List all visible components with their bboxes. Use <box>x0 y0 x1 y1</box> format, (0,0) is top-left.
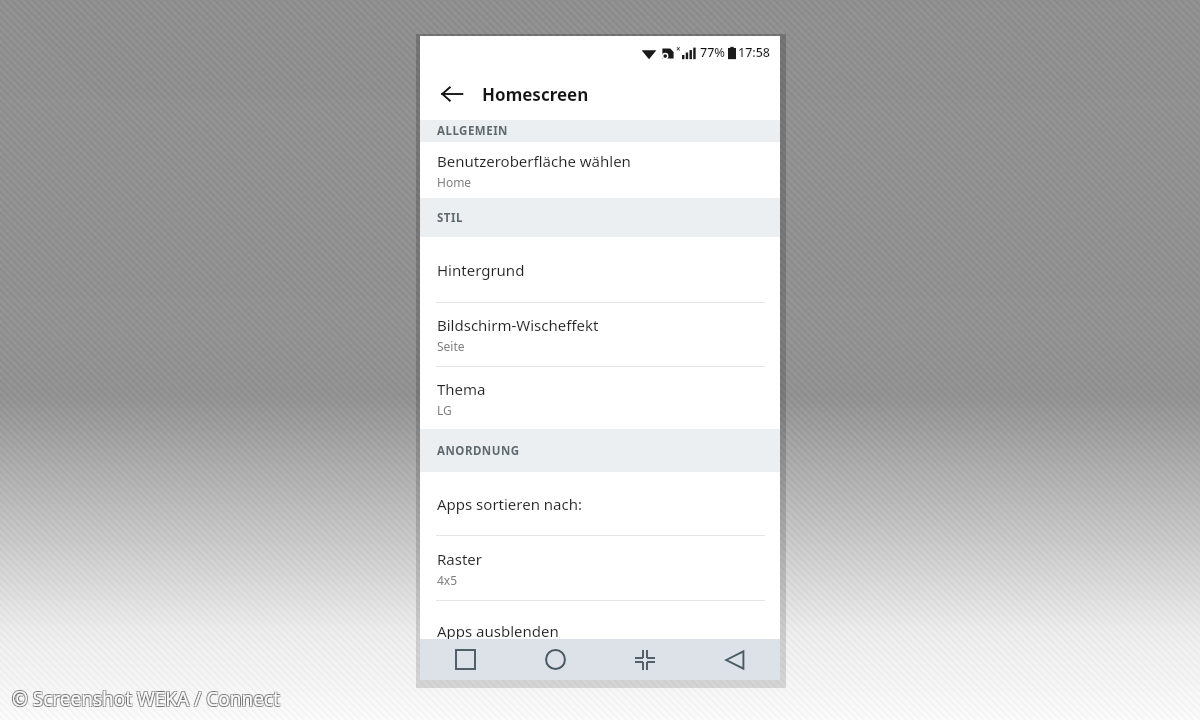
staticText: Apps ausblenden <box>437 621 559 641</box>
staticText: © Screenshot WEKA / Connect <box>11 687 279 713</box>
staticText: © Screenshot WEKA / Connect <box>11 685 279 711</box>
button[interactable]: Back <box>690 639 780 680</box>
staticText: © Screenshot WEKA / Connect <box>13 687 281 713</box>
button[interactable]: Bildschirm-Wischeffekt <box>420 303 780 366</box>
staticText: © Screenshot WEKA / Connect <box>12 686 280 712</box>
button[interactable]: Raster <box>420 536 780 600</box>
staticText: Thema <box>437 379 486 399</box>
staticText: × <box>676 43 681 54</box>
staticText: Seite <box>437 338 465 354</box>
button[interactable]: Home <box>510 639 600 680</box>
staticText: Benutzeroberfläche wählen <box>437 151 631 171</box>
button[interactable]: Benutzeroberfläche wählen <box>420 142 780 198</box>
staticText: STIL <box>437 210 463 226</box>
staticText: Homescreen <box>482 83 589 106</box>
button[interactable]: Recent apps <box>420 639 510 680</box>
staticText: 17:58 <box>738 44 771 61</box>
staticText: Home <box>437 174 472 190</box>
button[interactable]: Apps sortieren nach: <box>420 472 780 535</box>
staticText: ALLGEMEIN <box>437 123 508 139</box>
staticText: 77% <box>700 44 725 61</box>
staticText: Hintergrund <box>437 260 525 280</box>
staticText: Bildschirm-Wischeffekt <box>437 315 599 335</box>
staticText: Apps sortieren nach: <box>437 494 583 514</box>
button[interactable]: Hintergrund <box>420 237 780 302</box>
button[interactable]: Back <box>436 78 468 110</box>
staticText: 4x5 <box>437 572 458 588</box>
staticText: Raster <box>437 549 483 569</box>
staticText: LG <box>437 402 452 418</box>
button[interactable]: Apps ausblenden <box>420 601 780 661</box>
button[interactable]: Thema <box>420 367 780 429</box>
staticText: © Screenshot WEKA / Connect <box>13 685 281 711</box>
button[interactable]: Collapse <box>600 639 690 680</box>
staticText: ANORDNUNG <box>437 443 520 459</box>
